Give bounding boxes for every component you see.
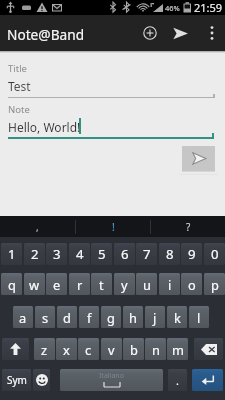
button[interactable]: l <box>189 306 209 328</box>
staticText: e <box>53 276 61 293</box>
button[interactable]: Sym <box>2 369 31 391</box>
staticText: Note <box>8 103 30 116</box>
staticText: m <box>172 341 184 358</box>
staticText: d <box>63 309 71 326</box>
staticText: 8 <box>166 245 174 263</box>
staticText: r <box>77 276 83 293</box>
staticText: u <box>143 276 151 293</box>
staticText: a <box>19 309 27 326</box>
staticText: ? <box>186 220 191 234</box>
button[interactable]: j <box>145 306 165 328</box>
button[interactable]: 9 <box>181 243 202 265</box>
staticText: Note@Band <box>7 25 85 44</box>
staticText: y <box>121 276 128 293</box>
button[interactable]: Enter <box>192 369 223 391</box>
staticText: h <box>129 309 137 326</box>
button[interactable]: v <box>101 338 122 360</box>
button[interactable]: 1 <box>1 243 22 265</box>
staticText: Test <box>8 78 31 94</box>
button[interactable]: m <box>167 338 188 360</box>
staticText: Title <box>8 62 27 75</box>
staticText: Italiano <box>99 371 124 381</box>
staticText: o <box>188 276 196 293</box>
staticText: g <box>107 309 115 326</box>
staticText: p <box>211 276 219 293</box>
staticText: 46% <box>165 3 180 13</box>
button[interactable]: 7 <box>136 243 157 265</box>
button[interactable]: y <box>114 273 135 295</box>
staticText: ! <box>112 220 115 234</box>
button[interactable]: 0 <box>204 243 225 265</box>
staticText: f <box>87 309 92 326</box>
button[interactable]: Send note <box>182 146 215 171</box>
button[interactable]: h <box>123 306 143 328</box>
button[interactable]: o <box>181 273 202 295</box>
button[interactable]: Add <box>136 15 164 51</box>
button[interactable]: Space <box>60 369 163 391</box>
staticText: z <box>41 341 48 358</box>
button[interactable]: Shift <box>2 338 29 360</box>
button[interactable]: k <box>167 306 187 328</box>
button[interactable]: r <box>69 273 90 295</box>
button[interactable]: More options <box>199 15 225 51</box>
button[interactable]: a <box>13 306 33 328</box>
button[interactable]: p <box>204 273 225 295</box>
button[interactable]: z <box>34 338 55 360</box>
staticText: 2 <box>31 245 39 263</box>
staticText: t <box>99 276 104 293</box>
button[interactable]: ? <box>151 216 225 237</box>
button[interactable]: c <box>78 338 99 360</box>
staticText: Sym <box>7 373 27 387</box>
staticText: 6 <box>121 245 129 263</box>
button[interactable]: Delete <box>194 338 223 360</box>
staticText: 3 <box>53 245 61 263</box>
staticText: x <box>63 341 70 358</box>
staticText: c <box>85 341 92 358</box>
button[interactable]: ! <box>76 216 150 237</box>
button[interactable]: Send <box>166 15 194 51</box>
staticText: k <box>174 309 181 326</box>
button[interactable]: 6 <box>114 243 135 265</box>
button[interactable]: . <box>168 369 187 391</box>
staticText: n <box>152 341 160 358</box>
staticText: i <box>168 276 172 293</box>
staticText: 4 <box>76 245 84 263</box>
staticText: l <box>197 309 201 326</box>
button[interactable]: , <box>0 216 75 237</box>
button[interactable]: q <box>1 273 22 295</box>
button[interactable]: w <box>24 273 45 295</box>
button[interactable]: 5 <box>91 243 112 265</box>
button[interactable]: i <box>159 273 180 295</box>
staticText: q <box>8 276 16 293</box>
button[interactable]: g <box>101 306 121 328</box>
button[interactable]: 8 <box>159 243 180 265</box>
button[interactable]: x <box>56 338 77 360</box>
button[interactable]: u <box>136 273 157 295</box>
staticText: w <box>29 276 40 293</box>
button[interactable]: 2 <box>24 243 45 265</box>
button[interactable]: 3 <box>46 243 67 265</box>
staticText: 9 <box>188 245 196 263</box>
button[interactable]: e <box>46 273 67 295</box>
staticText: 0 <box>211 245 219 263</box>
button[interactable]: f <box>79 306 99 328</box>
staticText: s <box>42 309 49 326</box>
staticText: , <box>36 220 39 234</box>
button[interactable]: n <box>145 338 166 360</box>
button[interactable]: b <box>123 338 144 360</box>
button[interactable]: d <box>57 306 77 328</box>
button[interactable]: t <box>91 273 112 295</box>
staticText: 7 <box>143 245 151 263</box>
staticText: 5 <box>98 245 106 263</box>
staticText: Hello, World! <box>8 119 81 135</box>
staticText: b <box>130 341 138 358</box>
button[interactable]: s <box>35 306 55 328</box>
staticText: 1 <box>8 245 16 263</box>
staticText: 21:59 <box>194 0 223 15</box>
staticText: . <box>176 373 179 388</box>
button[interactable]: Emoji <box>33 369 50 391</box>
staticText: v <box>108 341 115 358</box>
staticText: j <box>153 309 157 326</box>
button[interactable]: 4 <box>69 243 90 265</box>
